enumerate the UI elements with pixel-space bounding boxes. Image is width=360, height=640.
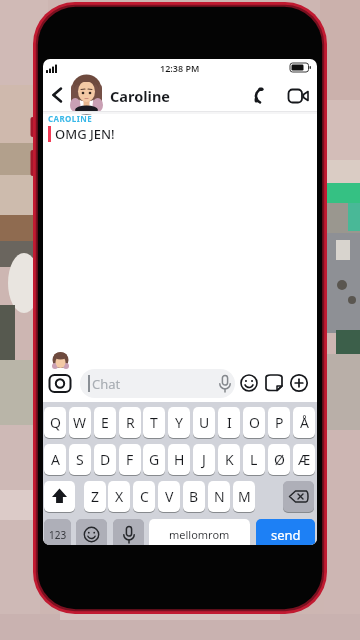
staticText: W	[73, 413, 87, 432]
staticText: D	[100, 450, 111, 469]
button[interactable]: X	[108, 481, 130, 512]
staticText: Å	[300, 413, 309, 432]
button[interactable]: B	[183, 481, 205, 512]
staticText: Chat	[92, 375, 121, 393]
staticText: F	[126, 450, 134, 469]
button[interactable]: E	[94, 407, 116, 438]
staticText: E	[101, 413, 109, 432]
staticText: U	[199, 413, 210, 432]
button[interactable]	[290, 374, 308, 392]
staticText: Æ	[298, 450, 311, 469]
staticText: O	[249, 413, 260, 432]
button[interactable]: D	[94, 444, 116, 475]
staticText: mellomrom	[169, 527, 230, 542]
staticText: J	[202, 450, 206, 469]
button[interactable]: P	[268, 407, 290, 438]
button[interactable]: Æ	[293, 444, 315, 475]
button[interactable]: M	[233, 481, 255, 512]
staticText: L	[250, 450, 258, 469]
button[interactable]: J	[193, 444, 215, 475]
button[interactable]: N	[208, 481, 230, 512]
staticText: B	[189, 487, 199, 506]
staticText: G	[149, 450, 160, 469]
staticText: S	[76, 450, 84, 469]
button[interactable]: S	[69, 444, 91, 475]
staticText: Ø	[274, 450, 285, 469]
staticText: CAROLINE	[48, 113, 93, 124]
staticText: 123	[49, 528, 67, 542]
button[interactable]: A	[44, 444, 66, 475]
staticText: V	[165, 487, 174, 506]
staticText: M	[238, 487, 251, 506]
staticText: K	[225, 450, 234, 469]
button[interactable]: F	[119, 444, 141, 475]
button[interactable]: H	[168, 444, 190, 475]
button[interactable]	[287, 87, 309, 105]
button[interactable]: Ø	[268, 444, 290, 475]
button[interactable]: U	[193, 407, 215, 438]
button[interactable]: Q	[44, 407, 66, 438]
staticText: Caroline	[110, 86, 170, 106]
button[interactable]: I	[218, 407, 240, 438]
button[interactable]	[44, 481, 75, 512]
staticText: Y	[175, 413, 183, 432]
staticText: send	[271, 526, 301, 544]
staticText: OMG JEN!	[55, 125, 115, 143]
button[interactable]: R	[119, 407, 141, 438]
button[interactable]: G	[143, 444, 165, 475]
button[interactable]: C	[133, 481, 155, 512]
staticText: 12:38 PM	[160, 62, 200, 74]
button[interactable]: mellomrom	[149, 519, 250, 545]
button[interactable]	[48, 371, 72, 395]
button[interactable]	[252, 85, 274, 107]
button[interactable]	[45, 83, 69, 107]
staticText: T	[150, 413, 158, 432]
button[interactable]: Z	[84, 481, 106, 512]
button[interactable]: L	[243, 444, 265, 475]
button[interactable]: Å	[293, 407, 315, 438]
button[interactable]	[113, 519, 144, 545]
button[interactable]: V	[158, 481, 180, 512]
button[interactable]	[283, 481, 314, 512]
button[interactable]: T	[143, 407, 165, 438]
button[interactable]	[76, 519, 107, 545]
button[interactable]: Chat	[80, 369, 235, 398]
staticText: Z	[91, 487, 100, 506]
staticText: H	[174, 450, 185, 469]
staticText: N	[214, 487, 225, 506]
staticText: C	[140, 487, 149, 506]
staticText: X	[115, 487, 124, 506]
button[interactable]: Y	[168, 407, 190, 438]
staticText: A	[51, 450, 60, 469]
button[interactable]: send	[256, 519, 315, 545]
button[interactable]: W	[69, 407, 91, 438]
staticText: Q	[50, 413, 61, 432]
staticText: I	[227, 413, 232, 432]
button[interactable]: K	[218, 444, 240, 475]
button[interactable]: O	[243, 407, 265, 438]
button[interactable]	[240, 374, 258, 392]
button[interactable]: 123	[44, 519, 71, 545]
button[interactable]	[265, 374, 283, 392]
staticText: P	[275, 413, 284, 432]
staticText: R	[126, 413, 135, 432]
